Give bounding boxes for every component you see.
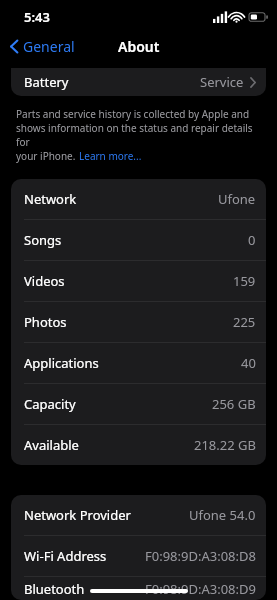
button[interactable]: Network [11, 179, 266, 219]
staticText: your iPhone. [16, 149, 79, 163]
button[interactable]: Battery [11, 68, 266, 96]
staticText: F0:98:9D:A3:08:D9 [145, 580, 256, 598]
staticText: Capacity [24, 395, 76, 413]
staticText: Applications [24, 354, 99, 372]
staticText: Photos [24, 313, 67, 331]
button[interactable]: Songs [11, 220, 266, 260]
button[interactable]: Applications [11, 343, 266, 383]
staticText: General [23, 37, 75, 56]
staticText: 40 [241, 354, 256, 372]
staticText: Network Provider [24, 506, 131, 524]
staticText: Ufone 54.0 [189, 506, 256, 524]
staticText: 256 GB [212, 395, 256, 413]
staticText: 159 [233, 272, 256, 290]
staticText: shows information on the status and repa… [16, 121, 260, 149]
staticText: Bluetooth [24, 580, 85, 598]
staticText: F0:98:9D:A3:08:D8 [145, 547, 256, 565]
button[interactable]: Photos [11, 302, 266, 342]
staticText: Parts and service history is collected b… [16, 107, 250, 121]
button[interactable]: Available [11, 425, 266, 465]
button[interactable]: General [6, 34, 79, 59]
staticText: 5:43 [24, 8, 50, 26]
staticText: 225 [233, 313, 256, 331]
staticText: Battery [24, 73, 69, 91]
staticText: Network [24, 190, 77, 208]
staticText: Songs [24, 231, 62, 249]
button[interactable]: Wi-Fi Address [11, 536, 266, 576]
button[interactable]: Bluetooth [11, 577, 266, 600]
button[interactable]: Network Provider [11, 495, 266, 535]
staticText: Ufone [218, 190, 256, 208]
staticText: 218.22 GB [194, 436, 256, 454]
button[interactable]: Learn more... [79, 149, 142, 163]
staticText: Videos [24, 272, 65, 290]
staticText: Available [24, 436, 79, 454]
staticText: Wi-Fi Address [24, 547, 107, 565]
staticText: About [118, 37, 160, 56]
button[interactable]: Videos [11, 261, 266, 301]
staticText: Learn more... [79, 149, 142, 163]
staticText: Service [200, 73, 244, 91]
button[interactable]: Capacity [11, 384, 266, 424]
staticText: 0 [248, 231, 256, 249]
